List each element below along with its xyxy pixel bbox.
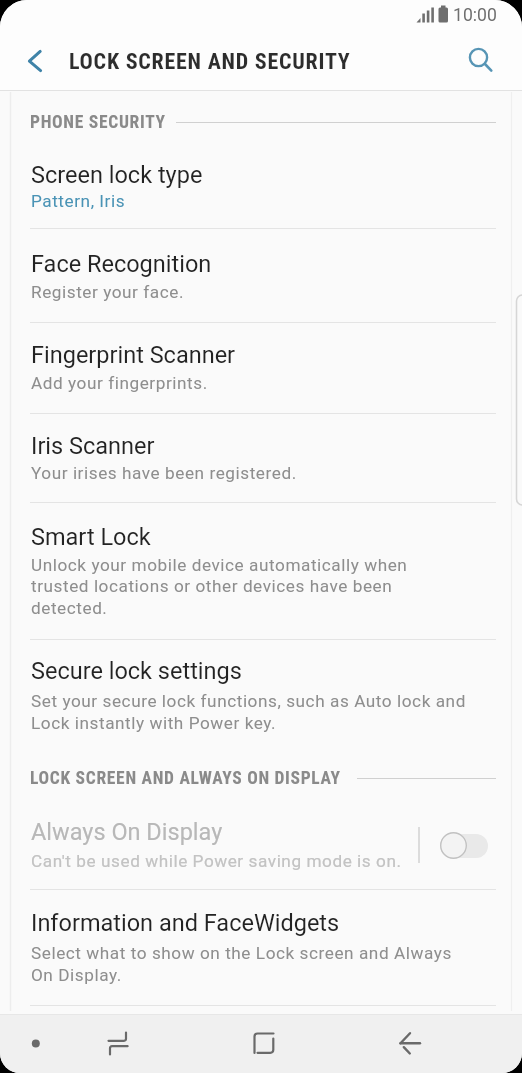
staticText: Screen lock type: [31, 161, 203, 189]
staticText: trusted locations or other devices have …: [31, 576, 393, 596]
button[interactable]: Iris Scanner: [0, 413, 522, 502]
staticText: Register your face.: [31, 282, 185, 302]
staticText: Add your fingerprints.: [31, 373, 208, 393]
staticText: Can't be used while Power saving mode is…: [31, 851, 402, 871]
staticText: LOCK SCREEN AND SECURITY: [69, 49, 351, 75]
staticText: Information and FaceWidgets: [31, 909, 340, 937]
staticText: Pattern, Iris: [31, 191, 126, 211]
button[interactable]: [93, 1018, 143, 1068]
button[interactable]: [236, 1018, 286, 1068]
button[interactable]: Smart Lock: [0, 502, 522, 639]
staticText: PHONE SECURITY: [30, 112, 166, 133]
button[interactable]: Fingerprint Scanner: [0, 322, 522, 413]
button[interactable]: Screen lock type: [0, 145, 522, 228]
staticText: Select what to show on the Lock screen a…: [31, 943, 452, 963]
button[interactable]: [462, 41, 502, 81]
staticText: Iris Scanner: [31, 432, 155, 460]
staticText: Set your secure lock functions, such as …: [31, 691, 466, 711]
staticText: Always On Display: [31, 818, 223, 846]
button[interactable]: Secure lock settings: [0, 639, 522, 755]
staticText: 10:00: [453, 5, 497, 26]
button[interactable]: Information and FaceWidgets: [0, 890, 522, 1005]
staticText: Secure lock settings: [31, 657, 242, 685]
button[interactable]: [440, 834, 488, 858]
staticText: On Display.: [31, 965, 122, 985]
button[interactable]: [18, 43, 54, 79]
staticText: Lock instantly with Power key.: [31, 713, 277, 733]
staticText: Your irises have been registered.: [31, 463, 297, 483]
staticText: Unlock your mobile device automatically …: [31, 555, 408, 575]
button[interactable]: Face Recognition: [0, 228, 522, 322]
staticText: Face Recognition: [31, 250, 212, 278]
staticText: Smart Lock: [31, 523, 151, 551]
staticText: detected.: [31, 598, 108, 618]
button[interactable]: [385, 1018, 435, 1068]
staticText: Fingerprint Scanner: [31, 341, 236, 369]
staticText: LOCK SCREEN AND ALWAYS ON DISPLAY: [30, 768, 341, 789]
button[interactable]: Always On Display: [0, 800, 522, 890]
